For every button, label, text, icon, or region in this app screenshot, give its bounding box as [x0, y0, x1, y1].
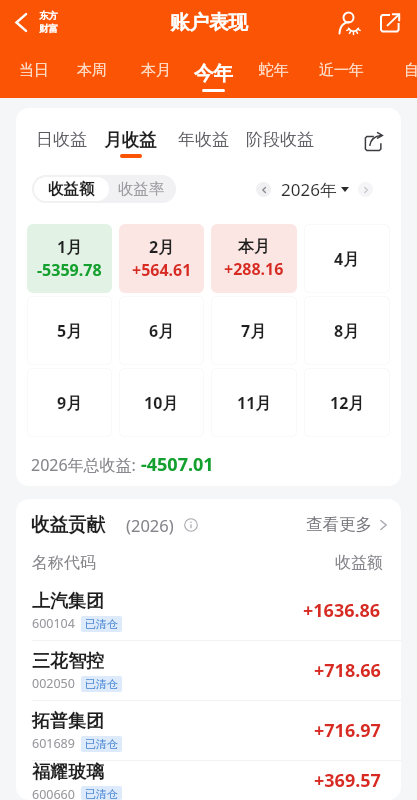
- staticText: 已清仓: [85, 787, 118, 799]
- button[interactable]: 9月: [27, 368, 112, 437]
- staticText: 收益率: [118, 179, 165, 199]
- staticText: 福耀玻璃: [32, 761, 104, 784]
- staticText: 2026年: [281, 178, 337, 201]
- staticText: 近一年: [319, 61, 364, 80]
- staticText: 蛇年: [259, 61, 289, 80]
- staticText: +716.97: [314, 718, 381, 743]
- button[interactable]: 下一年: [358, 182, 373, 197]
- staticText: 阶段收益: [246, 129, 314, 150]
- button[interactable]: 2月: [119, 224, 204, 293]
- button[interactable]: 三花智控: [16, 641, 401, 700]
- staticText: 6月: [149, 320, 175, 342]
- button[interactable]: 说明: [183, 517, 199, 533]
- staticText: 12月: [330, 392, 365, 414]
- staticText: 1月: [57, 236, 83, 258]
- button[interactable]: 查看更多: [306, 514, 387, 535]
- button[interactable]: 今年: [194, 52, 233, 92]
- staticText: 本周: [77, 61, 107, 80]
- button[interactable]: 本月: [141, 52, 171, 80]
- staticText: 账户表现: [170, 10, 248, 35]
- button[interactable]: 1月: [27, 224, 112, 293]
- staticText: 10月: [144, 392, 179, 414]
- staticText: 日收益: [36, 129, 87, 150]
- button[interactable]: 日收益: [36, 129, 87, 150]
- button[interactable]: 7月: [211, 296, 297, 365]
- staticText: 601689: [32, 735, 75, 752]
- staticText: 600660: [32, 786, 75, 800]
- staticText: 已清仓: [85, 617, 118, 631]
- staticText: 5月: [57, 320, 83, 342]
- staticText: 上汽集团: [32, 590, 104, 613]
- staticText: 收益额: [335, 553, 383, 573]
- button[interactable]: 8月: [304, 296, 390, 365]
- button[interactable]: 近一年: [319, 52, 364, 80]
- staticText: 4月: [334, 248, 360, 270]
- button[interactable]: 4月: [304, 224, 390, 293]
- staticText: 当日: [19, 61, 49, 80]
- button[interactable]: 阶段收益: [246, 129, 314, 150]
- staticText: 年收益: [178, 129, 229, 150]
- button[interactable]: 当日: [19, 52, 49, 80]
- button[interactable]: 12月: [304, 368, 390, 437]
- staticText: 拓普集团: [32, 710, 104, 733]
- staticText: +564.61: [132, 259, 192, 281]
- button[interactable]: 5月: [27, 296, 112, 365]
- button[interactable]: 拓普集团: [16, 701, 401, 760]
- staticText: +718.66: [314, 658, 381, 683]
- button[interactable]: 自: [404, 52, 417, 80]
- button[interactable]: 上汽集团: [16, 581, 401, 640]
- button[interactable]: 收益率: [109, 177, 174, 201]
- staticText: +369.57: [314, 768, 381, 793]
- staticText: 600104: [32, 615, 75, 632]
- button[interactable]: 蛇年: [259, 52, 289, 80]
- staticText: 已清仓: [85, 677, 118, 691]
- staticText: 自: [404, 61, 417, 80]
- button[interactable]: 福耀玻璃: [16, 761, 401, 800]
- staticText: -5359.78: [37, 259, 102, 281]
- button[interactable]: 本月: [211, 224, 297, 293]
- staticText: 2月: [149, 236, 175, 258]
- staticText: 月收益: [104, 129, 157, 151]
- button[interactable]: 10月: [119, 368, 204, 437]
- staticText: 财富: [39, 23, 58, 35]
- staticText: 东方: [39, 10, 58, 22]
- staticText: +1636.86: [303, 598, 381, 623]
- staticText: 8月: [334, 320, 360, 342]
- staticText: 9月: [57, 392, 83, 414]
- staticText: -4507.01: [141, 452, 214, 477]
- staticText: 查看更多: [306, 514, 372, 535]
- button[interactable]: 11月: [211, 368, 297, 437]
- staticText: 7月: [241, 320, 267, 342]
- staticText: 11月: [237, 392, 272, 414]
- button[interactable]: 年收益: [178, 129, 229, 150]
- staticText: (2026): [126, 514, 174, 536]
- button[interactable]: 2026年: [281, 178, 349, 201]
- button[interactable]: 月收益: [104, 129, 157, 158]
- staticText: 本月: [141, 61, 171, 80]
- button[interactable]: 返回: [15, 6, 58, 39]
- button[interactable]: 分享: [377, 10, 403, 36]
- staticText: 已清仓: [85, 737, 118, 751]
- staticText: 收益额: [48, 179, 95, 199]
- button[interactable]: 账户: [336, 9, 364, 37]
- staticText: 今年: [194, 61, 233, 86]
- button[interactable]: 6月: [119, 296, 204, 365]
- staticText: 002050: [32, 675, 75, 692]
- button[interactable]: 收益额: [34, 177, 109, 201]
- staticText: +288.16: [224, 258, 284, 280]
- staticText: 本月: [238, 237, 270, 257]
- staticText: 名称代码: [32, 553, 96, 573]
- button[interactable]: 上一年: [256, 182, 271, 197]
- staticText: 2026年总收益:: [31, 454, 141, 476]
- staticText: 三花智控: [32, 650, 104, 673]
- staticText: 收益贡献: [31, 513, 105, 536]
- button[interactable]: 本周: [77, 52, 107, 80]
- button[interactable]: 分享: [361, 130, 385, 154]
